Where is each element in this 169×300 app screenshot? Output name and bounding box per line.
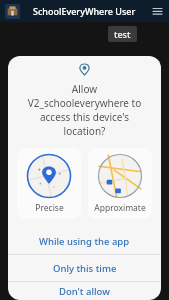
- staticText: test: [114, 28, 131, 40]
- button[interactable]: Only this time: [8, 255, 161, 281]
- button[interactable]: Don't allow: [8, 282, 161, 300]
- staticText: Only this time: [53, 262, 117, 275]
- button[interactable]: App logo: [5, 4, 20, 19]
- button[interactable]: test: [108, 26, 137, 42]
- staticText: While using the app: [39, 235, 130, 248]
- button[interactable]: While using the app: [8, 228, 161, 254]
- staticText: Allow V2_schooleverywhere to access this…: [20, 82, 149, 138]
- staticText: Precise: [35, 202, 64, 214]
- button[interactable]: Approximate: [88, 148, 152, 219]
- staticText: Don't allow: [59, 285, 110, 298]
- staticText: Approximate: [94, 202, 146, 214]
- staticText: SchoolEveryWhere User: [33, 5, 136, 17]
- button[interactable]: Precise: [17, 148, 81, 219]
- button[interactable]: Menu: [150, 4, 164, 18]
